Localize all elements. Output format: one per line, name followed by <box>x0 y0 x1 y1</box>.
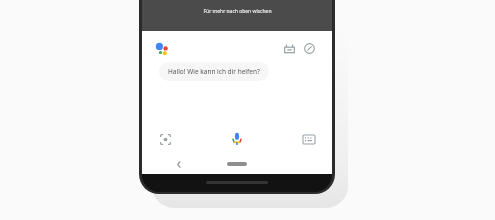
button[interactable]: Voice input <box>226 128 248 150</box>
button[interactable]: Hallo! Wie kann ich dir helfen? <box>159 62 269 81</box>
button[interactable]: Keyboard <box>300 130 318 148</box>
button[interactable]: Google Assistant <box>153 40 173 60</box>
button[interactable]: Google Lens <box>156 130 174 148</box>
staticText: Hallo! Wie kann ich dir helfen? <box>168 67 260 76</box>
button[interactable]: Home <box>222 157 252 171</box>
staticText: Für mehr nach oben wischen <box>203 8 272 15</box>
button[interactable]: Snapshot <box>281 40 297 56</box>
button[interactable]: Explore <box>301 40 317 56</box>
button[interactable]: Back <box>170 154 188 174</box>
